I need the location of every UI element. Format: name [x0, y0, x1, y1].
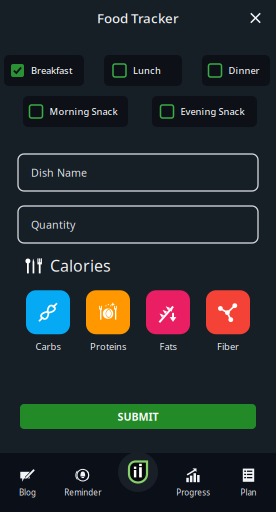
staticText: Dinner: [228, 64, 259, 77]
button[interactable]: Morning Snack: [23, 96, 128, 127]
staticText: Plan: [240, 487, 256, 498]
button[interactable]: Carbs: [26, 290, 70, 353]
staticText: Dish Name: [31, 165, 87, 180]
button[interactable]: Reminder: [55, 465, 110, 501]
staticText: Proteins: [90, 340, 126, 353]
button[interactable]: Add entry: [118, 452, 158, 492]
button[interactable]: Close: [242, 4, 269, 31]
staticText: Carbs: [35, 340, 60, 353]
staticText: Fats: [159, 340, 176, 353]
button[interactable]: Lunch: [104, 55, 182, 86]
staticText: Calories: [50, 255, 111, 276]
staticText: Quantity: [31, 217, 75, 232]
staticText: Fiber: [217, 340, 239, 353]
button[interactable]: Breakfast: [4, 55, 84, 86]
staticText: Reminder: [64, 487, 101, 498]
button[interactable]: Blog: [0, 465, 55, 501]
button[interactable]: Fats: [146, 290, 190, 353]
button[interactable]: Dinner: [202, 55, 270, 86]
button[interactable]: Fiber: [206, 290, 250, 353]
staticText: Progress: [176, 487, 210, 498]
staticText: Evening Snack: [180, 105, 244, 118]
button[interactable]: SUBMIT: [20, 404, 256, 429]
staticText: Lunch: [133, 64, 161, 77]
staticText: SUBMIT: [117, 409, 158, 424]
staticText: Breakfast: [31, 64, 73, 77]
staticText: Blog: [19, 487, 36, 498]
staticText: Food Tracker: [97, 9, 179, 27]
button[interactable]: Plan: [221, 465, 276, 501]
button[interactable]: Proteins: [86, 290, 130, 353]
button[interactable]: Evening Snack: [152, 96, 257, 127]
button[interactable]: Progress: [166, 465, 221, 501]
staticText: Morning Snack: [49, 105, 117, 118]
